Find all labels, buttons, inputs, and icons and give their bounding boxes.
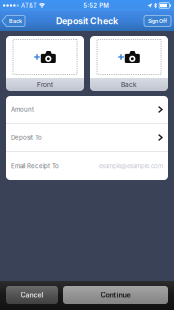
staticText: Email Receipt To (11, 162, 59, 170)
button[interactable]: Cancel (6, 286, 58, 304)
staticText: 5:52 PM (83, 2, 109, 9)
staticText: Sign Off (148, 18, 167, 24)
staticText: Back (9, 18, 22, 24)
button[interactable]: Email Receipt To (6, 152, 168, 180)
staticText: Back (121, 80, 137, 89)
staticText: Cancel (20, 291, 43, 299)
button[interactable]: Deposit To (6, 124, 168, 152)
button[interactable]: Front (6, 36, 84, 91)
button[interactable]: Sign Off (144, 15, 171, 26)
button[interactable]: Back (90, 36, 168, 91)
staticText: Amount (11, 106, 34, 113)
staticText: example@example.com (99, 162, 163, 170)
staticText: AT&T (21, 2, 37, 9)
button[interactable]: Continue (63, 286, 168, 304)
staticText: Front (37, 80, 53, 89)
button[interactable]: Amount (6, 96, 168, 124)
staticText: Deposit To (11, 134, 42, 141)
button[interactable]: Back (2, 15, 25, 26)
staticText: Continue (100, 291, 130, 299)
staticText: Deposit Check (56, 16, 118, 26)
